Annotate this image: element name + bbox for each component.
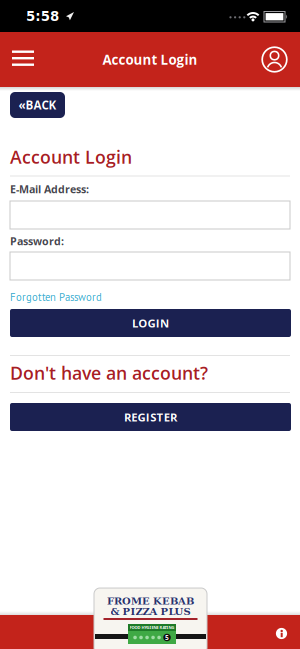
button[interactable]: Forgotten Password (0, 280, 290, 305)
staticText: «BACK (18, 97, 56, 113)
staticText: Account Login (102, 50, 197, 69)
button[interactable]: REGISTER (10, 403, 291, 431)
staticText: REGISTER (124, 409, 177, 425)
staticText: Don't have an account? (10, 361, 208, 385)
button[interactable] (268, 620, 294, 646)
staticText: LOGIN (132, 315, 169, 331)
staticText: 5:58 (26, 9, 59, 24)
staticText: E-Mail Address: (10, 182, 89, 196)
button[interactable]: «BACK (10, 92, 65, 118)
button[interactable] (249, 32, 299, 87)
staticText: Forgotten Password (10, 290, 102, 304)
staticText: 5 (165, 633, 169, 642)
button[interactable]: LOGIN (10, 309, 291, 337)
staticText: FOOD HYGIENE RATING (129, 625, 174, 630)
staticText: FROME KEBAB (107, 595, 194, 607)
staticText: Account Login (10, 145, 132, 169)
button[interactable] (0, 32, 48, 87)
staticText: & PIZZA PLUS (110, 606, 190, 617)
staticText: Password: (10, 234, 64, 248)
